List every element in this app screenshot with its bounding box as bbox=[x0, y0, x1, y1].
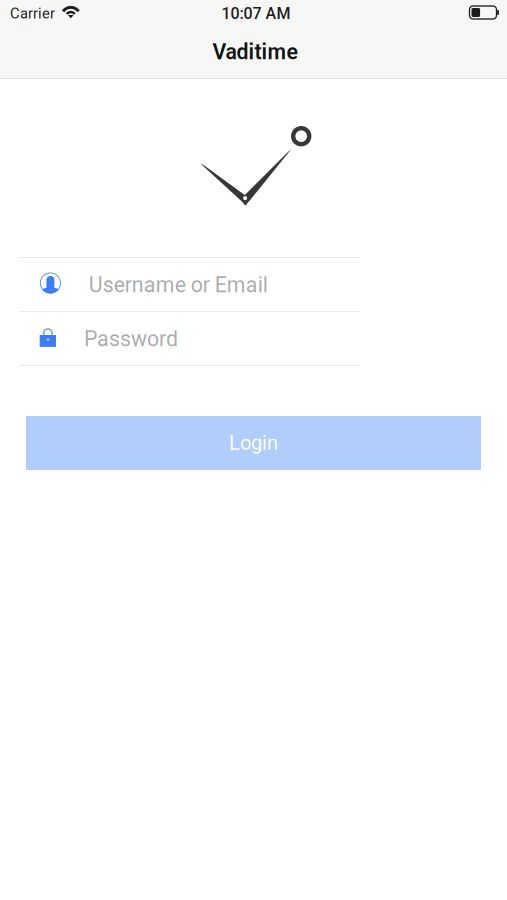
staticText: 10:07 AM bbox=[221, 4, 290, 23]
button[interactable]: Username or Email bbox=[21, 258, 361, 311]
button[interactable]: Password bbox=[21, 312, 361, 365]
staticText: Vaditime bbox=[212, 39, 297, 64]
staticText: Password bbox=[84, 326, 178, 351]
staticText: Login bbox=[229, 431, 278, 455]
staticText: Carrier bbox=[10, 5, 55, 22]
staticText: Username or Email bbox=[89, 272, 268, 297]
button[interactable]: Login bbox=[26, 416, 481, 470]
